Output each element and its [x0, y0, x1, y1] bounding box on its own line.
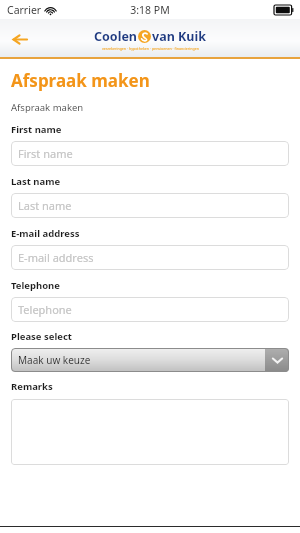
staticText: First name [18, 146, 73, 161]
staticText: Last name [11, 175, 61, 188]
button[interactable]: E-mail address [11, 245, 289, 270]
staticText: 3:18 PM [130, 3, 170, 17]
button[interactable] [11, 399, 289, 465]
button[interactable]: Maak uw keuze [11, 348, 289, 372]
button[interactable]: Back [4, 24, 34, 54]
button[interactable]: First name [11, 141, 289, 166]
staticText: Carrier [7, 3, 42, 17]
staticText: Afspraak maken [11, 101, 84, 114]
staticText: E-mail address [18, 250, 94, 265]
staticText: Remarks [11, 380, 53, 393]
button[interactable]: Telephone [11, 297, 289, 322]
button[interactable]: Last name [11, 193, 289, 218]
staticText: Please select [11, 330, 72, 343]
staticText: van Kuik [152, 28, 206, 45]
staticText: verzekeringen · hypotheken · pensioenen … [102, 46, 199, 51]
staticText: Coolen [94, 28, 137, 45]
staticText: Afspraak maken [11, 69, 150, 92]
staticText: Maak uw keuze [18, 353, 91, 367]
staticText: First name [11, 123, 62, 136]
staticText: E-mail address [11, 227, 80, 240]
staticText: Last name [18, 198, 72, 213]
staticText: Telephone [11, 279, 60, 292]
staticText: Telephone [18, 302, 72, 317]
